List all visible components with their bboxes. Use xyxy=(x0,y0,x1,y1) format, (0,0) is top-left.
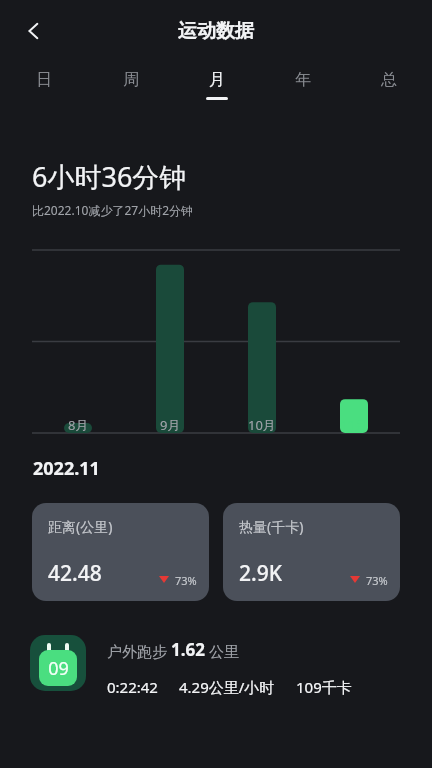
staticText: 距离(公里) xyxy=(48,517,113,536)
button[interactable]: Back xyxy=(10,7,58,55)
staticText: 热量(千卡) xyxy=(239,517,304,536)
staticText: 11月 xyxy=(340,416,368,434)
staticText: 42.48 xyxy=(48,559,102,588)
button[interactable]: 距离(公里) xyxy=(32,503,209,601)
staticText: 2022.11 xyxy=(33,456,100,481)
staticText: 月 xyxy=(209,70,225,90)
staticText: 年 xyxy=(295,70,311,90)
staticText: 运动数据 xyxy=(178,19,254,43)
staticText: 10月 xyxy=(248,416,276,434)
button[interactable]: 年 xyxy=(260,62,346,108)
staticText: 公里 xyxy=(205,641,239,661)
staticText: 6小时36分钟 xyxy=(32,158,187,195)
button[interactable]: 09 xyxy=(30,635,402,697)
staticText: 周 xyxy=(123,70,139,90)
staticText: 109千卡 xyxy=(296,677,352,697)
staticText: 1.62 xyxy=(171,638,205,661)
staticText: 73% xyxy=(366,573,388,588)
staticText: 日 xyxy=(36,70,52,90)
staticText: 8月 xyxy=(68,416,89,434)
staticText: 09 xyxy=(48,656,69,681)
button[interactable]: 热量(千卡) xyxy=(223,503,400,601)
staticText: 9月 xyxy=(160,416,181,434)
button[interactable]: 月 xyxy=(174,62,260,108)
button[interactable]: 总 xyxy=(346,62,432,108)
button[interactable]: 周 xyxy=(87,62,174,108)
staticText: 比2022.10减少了27小时2分钟 xyxy=(32,202,193,218)
staticText: 0:22:42 xyxy=(107,677,158,697)
staticText: 户外跑步 xyxy=(107,641,171,661)
staticText: 73% xyxy=(175,573,197,588)
staticText: 2.9K xyxy=(239,559,283,588)
button[interactable]: 日 xyxy=(0,62,87,108)
staticText: 4.29公里/小时 xyxy=(179,677,275,697)
staticText: 总 xyxy=(381,70,397,90)
